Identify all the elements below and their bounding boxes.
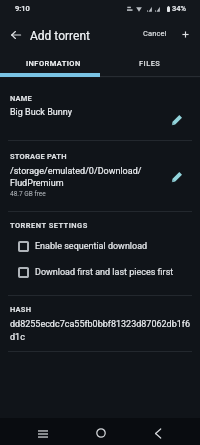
- staticText: Enable sequential download: [35, 241, 148, 252]
- staticText: Download first and last pieces first: [35, 267, 174, 278]
- staticText: NAME: [10, 94, 33, 103]
- button[interactable]: Add: [173, 22, 197, 46]
- button[interactable]: Edit name: [164, 108, 188, 132]
- staticText: 9:10: [15, 4, 30, 13]
- staticText: TORRENT SETTINGS: [10, 221, 88, 230]
- button[interactable]: Cancel: [138, 24, 172, 43]
- button[interactable]: Recent apps: [28, 420, 58, 445]
- button[interactable]: Edit storage path: [164, 165, 188, 189]
- button[interactable]: Home: [86, 419, 116, 445]
- staticText: FILES: [139, 59, 161, 68]
- staticText: Cancel: [143, 29, 167, 38]
- staticText: Add torrent: [30, 29, 90, 43]
- button[interactable]: Back: [4, 23, 28, 47]
- staticText: INFORMATION: [26, 59, 81, 68]
- staticText: 48.7 GB free: [10, 190, 46, 198]
- staticText: /storage/emulated/0/Download/ FludPremiu…: [10, 166, 142, 189]
- staticText: HASH: [10, 305, 32, 314]
- button[interactable]: INFORMATION: [0, 48, 100, 76]
- button[interactable]: FILES: [100, 48, 200, 76]
- staticText: dd8255ecdc7ca55fb0bbf81323d87062db1f6d1c: [10, 319, 191, 342]
- staticText: 34%: [172, 4, 187, 13]
- button[interactable]: Enable sequential download: [0, 237, 200, 255]
- button[interactable]: Back: [143, 420, 173, 445]
- staticText: Big Buck Bunny: [10, 107, 72, 118]
- button[interactable]: Download first and last pieces first: [0, 263, 200, 281]
- staticText: STORAGE PATH: [10, 152, 67, 161]
